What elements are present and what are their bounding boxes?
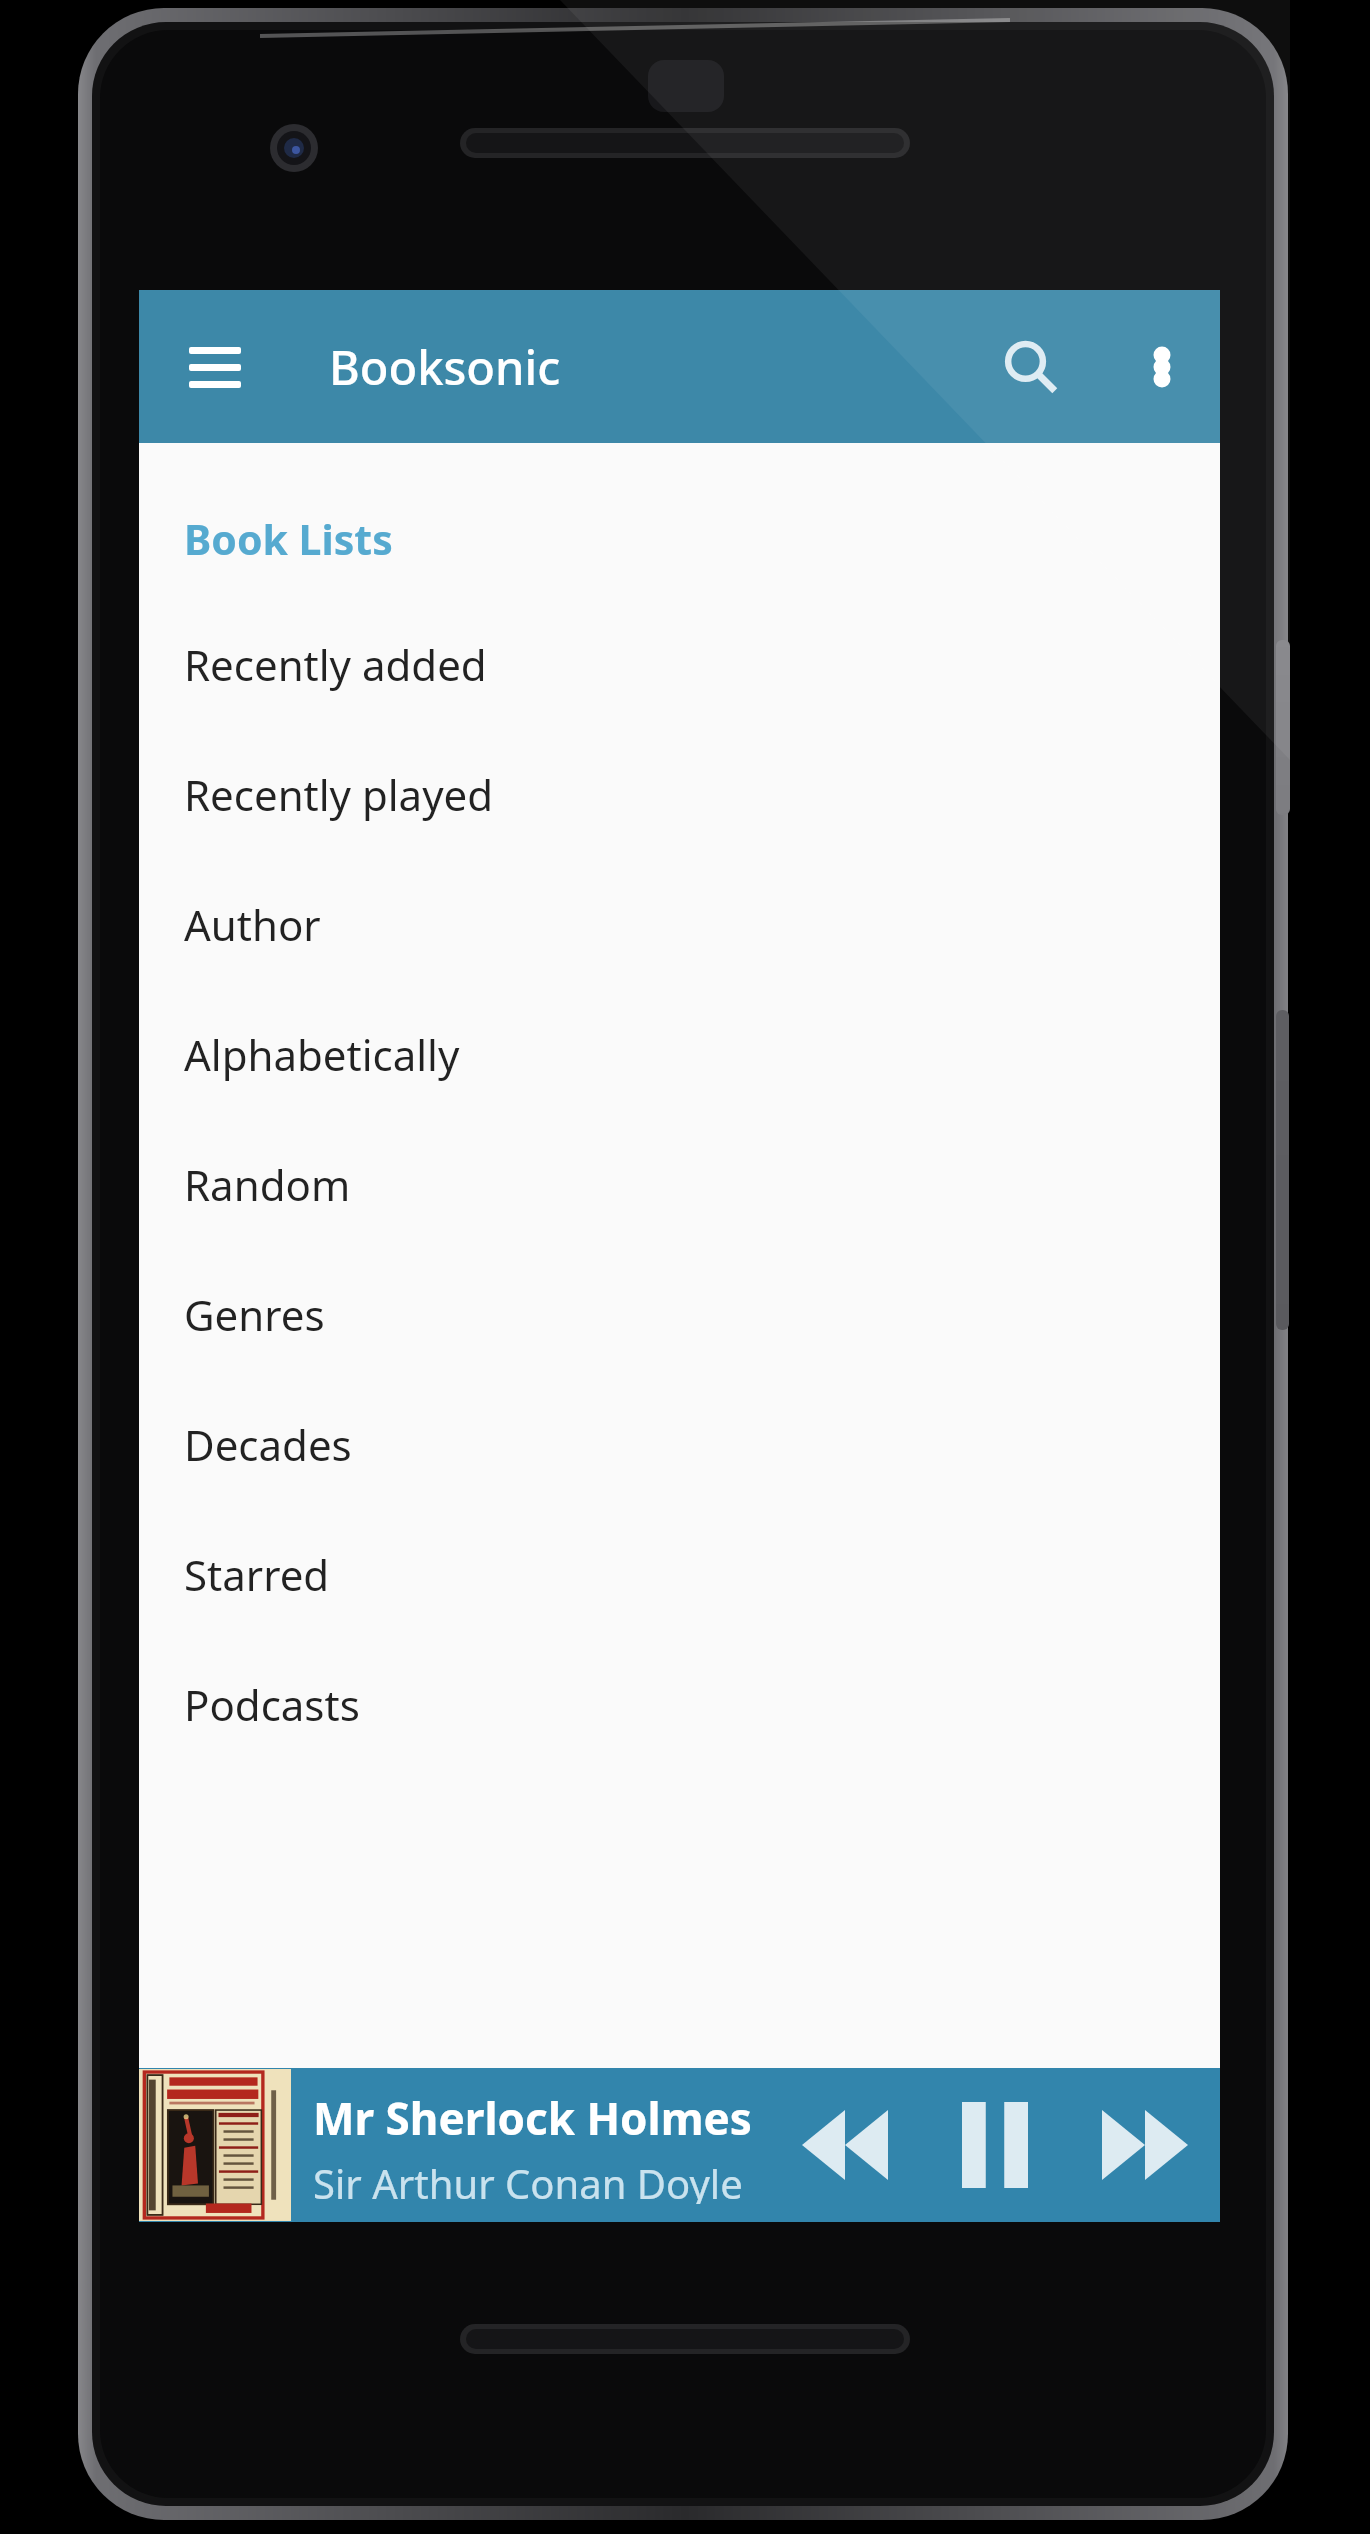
staticText: Random	[184, 1156, 351, 1213]
button[interactable]: Search	[975, 312, 1085, 422]
staticText: Recently added	[184, 636, 487, 693]
button[interactable]: Decades	[139, 1379, 1220, 1509]
staticText: Author	[184, 896, 321, 953]
staticText: Starred	[184, 1546, 330, 1603]
button[interactable]: Rewind	[770, 2068, 920, 2222]
button[interactable]: Author	[139, 859, 1220, 989]
staticText: Sir Arthur Conan Doyle	[313, 2156, 743, 2204]
staticText: Mr Sherlock Holmes	[313, 2088, 752, 2148]
button[interactable]: Recently played	[139, 729, 1220, 859]
button[interactable]: Genres	[139, 1249, 1220, 1379]
button[interactable]: Fast forward	[1070, 2068, 1220, 2222]
button[interactable]: Random	[139, 1119, 1220, 1249]
button[interactable]: Podcasts	[139, 1639, 1220, 1769]
staticText: Recently played	[184, 766, 494, 823]
staticText: Booksonic	[329, 335, 561, 399]
button[interactable]: Pause	[920, 2068, 1070, 2222]
button[interactable]: Now playing cover art	[139, 2069, 291, 2221]
button[interactable]: Starred	[139, 1509, 1220, 1639]
button[interactable]: Alphabetically	[139, 989, 1220, 1119]
staticText: Decades	[184, 1416, 352, 1473]
staticText: Podcasts	[184, 1676, 360, 1733]
button[interactable]: Open navigation drawer	[165, 317, 265, 417]
staticText: Genres	[184, 1286, 325, 1343]
staticText: Alphabetically	[184, 1026, 460, 1083]
button[interactable]: More options	[1112, 317, 1212, 417]
staticText: Book Lists	[184, 511, 393, 567]
button[interactable]: Recently added	[139, 599, 1220, 729]
button[interactable]: Mr Sherlock Holmes	[313, 2088, 762, 2204]
